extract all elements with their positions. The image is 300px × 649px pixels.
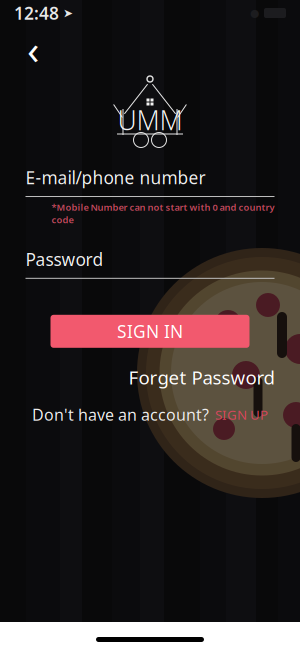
staticText: 12:48 [14, 1, 59, 24]
staticText: E-mail/phone number [25, 166, 205, 189]
staticText: Don't have an account? [32, 404, 209, 425]
staticText: *Mobile Number can not start with 0 and … [51, 201, 274, 226]
staticText: SIGN IN [117, 320, 183, 343]
staticText: Forget Password [128, 365, 274, 390]
staticText: Password [25, 248, 103, 271]
button[interactable]: Back [16, 32, 50, 66]
button[interactable]: Forget Password [128, 362, 274, 393]
staticText: ‹ [27, 22, 39, 75]
staticText: SIGN UP [215, 406, 268, 423]
staticText: ➤ [59, 6, 73, 20]
button[interactable]: SIGN UP [215, 403, 268, 426]
button[interactable]: SIGN IN [50, 315, 249, 348]
staticText: UMM [117, 102, 182, 138]
staticText: ● [250, 7, 259, 19]
